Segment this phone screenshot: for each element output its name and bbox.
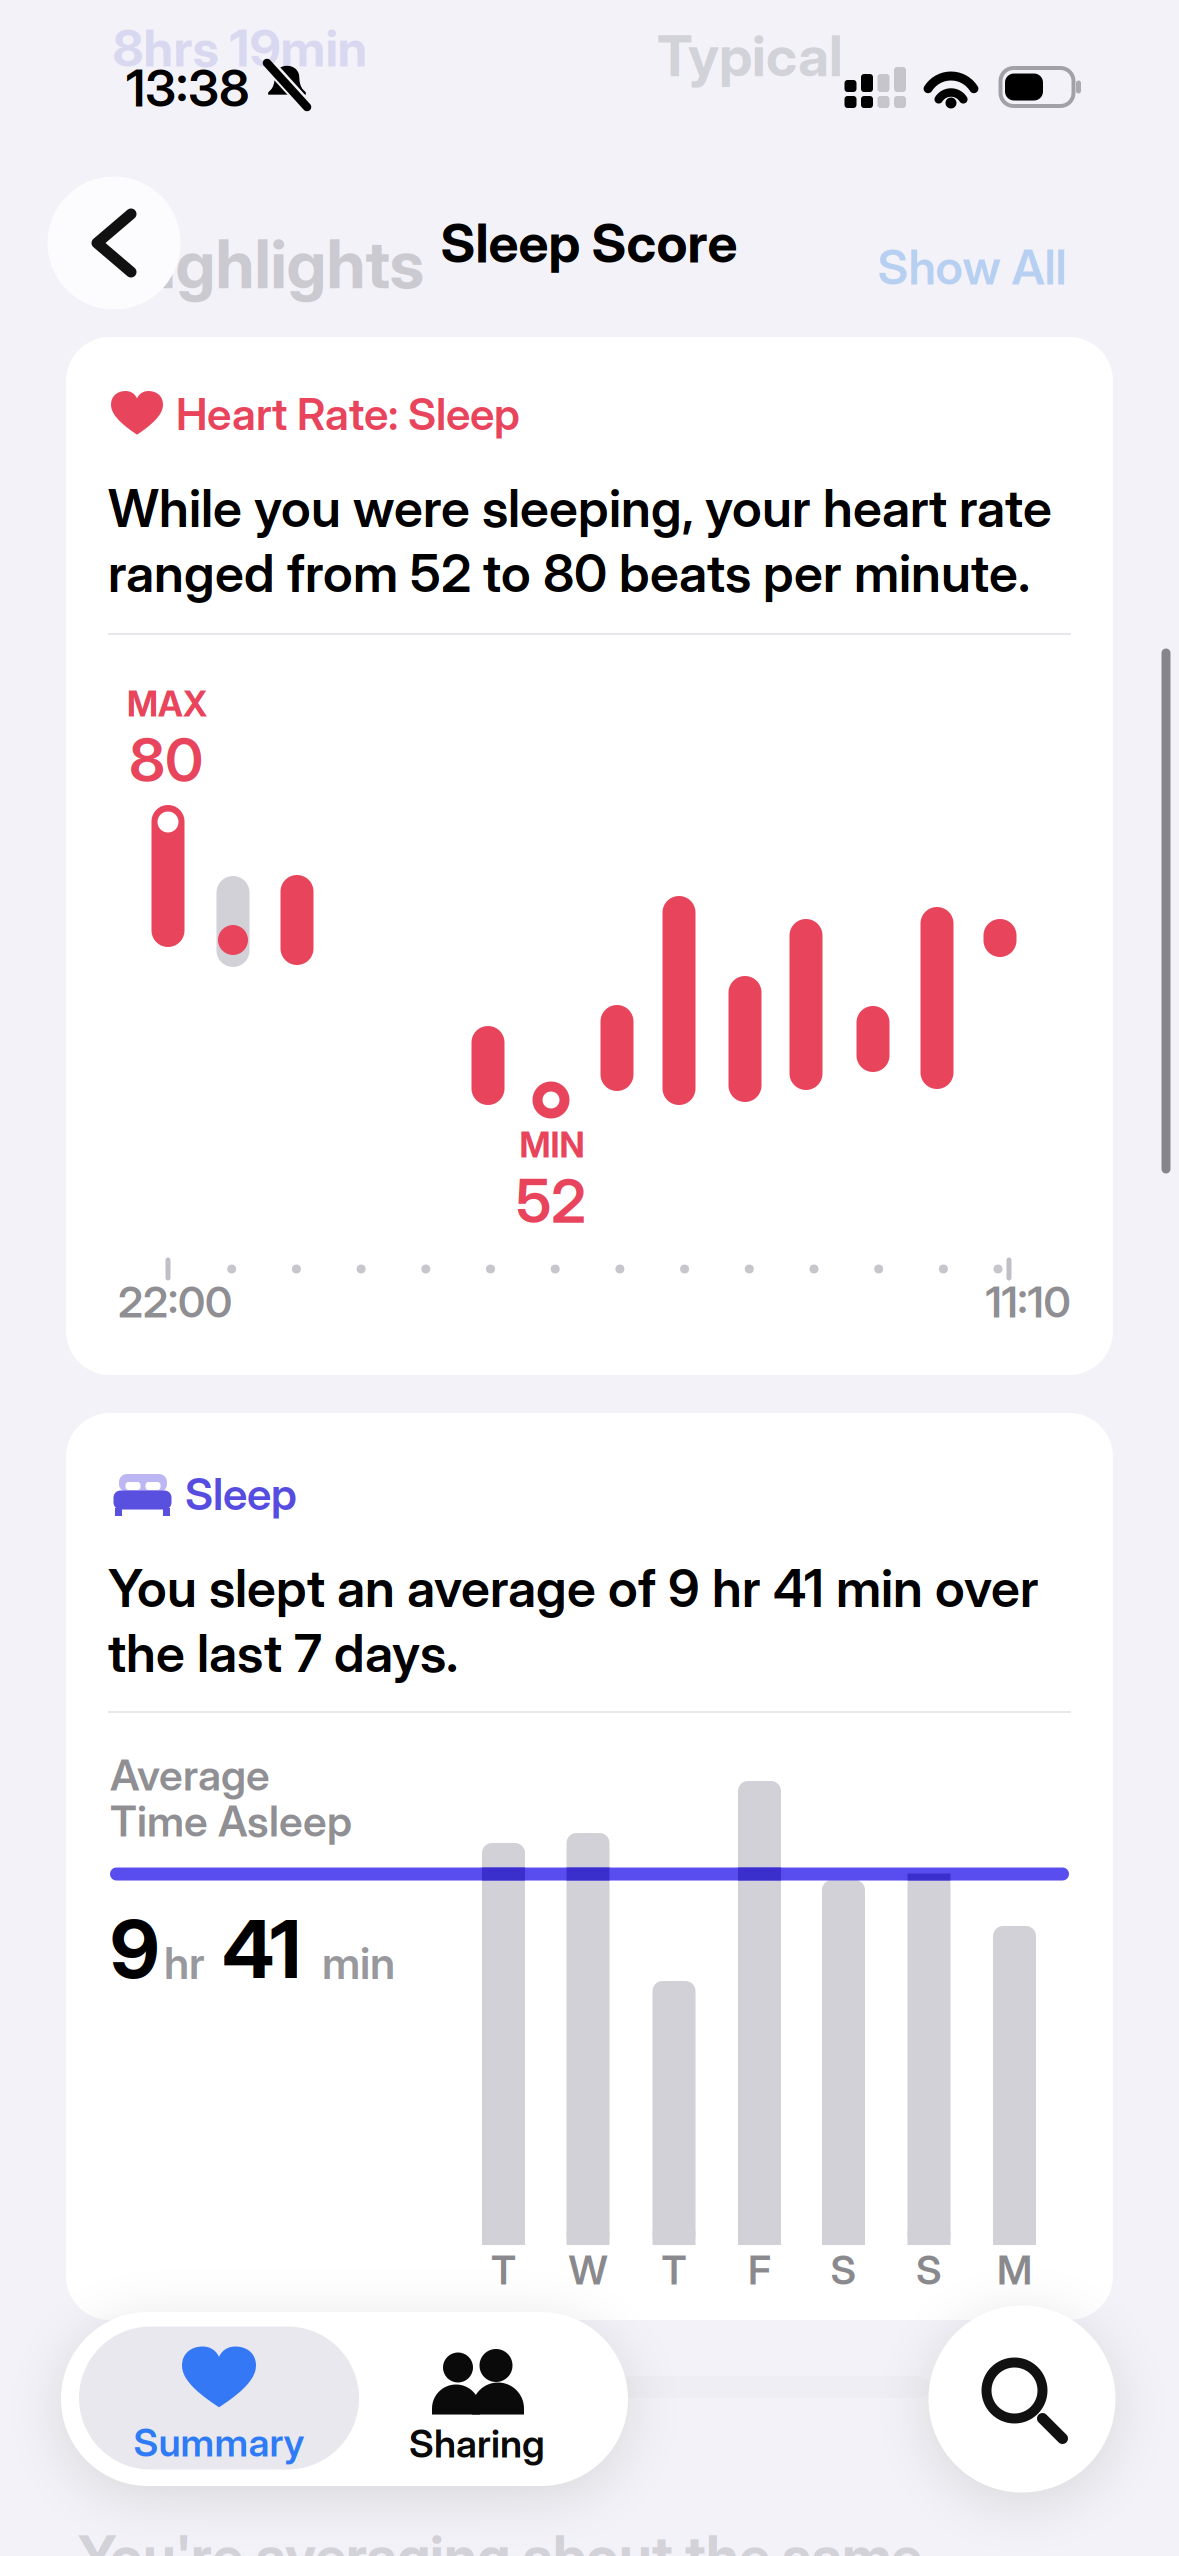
staticText: Time Asleep bbox=[110, 1796, 352, 1846]
staticText: M bbox=[997, 2246, 1032, 2294]
staticText: T bbox=[491, 2246, 516, 2294]
button[interactable]: Back bbox=[47, 176, 180, 309]
staticText: Sleep Score bbox=[440, 211, 737, 274]
staticText: MIN bbox=[519, 1125, 584, 1165]
staticText: 11:10 bbox=[985, 1277, 1070, 1327]
staticText: You're averaging about the same bbox=[78, 2523, 922, 2556]
button[interactable]: Sharing bbox=[420, 2323, 534, 2460]
staticText: 13:38 bbox=[126, 58, 250, 118]
staticText: Typical bbox=[657, 23, 843, 89]
staticText: hr bbox=[164, 1937, 205, 1989]
button[interactable]: Summary bbox=[79, 2326, 359, 2469]
staticText: Highlights bbox=[111, 225, 424, 303]
staticText: W bbox=[568, 2246, 607, 2294]
staticText: S bbox=[916, 2246, 942, 2294]
staticText: Sleep bbox=[185, 1468, 297, 1520]
staticText: T bbox=[661, 2246, 686, 2294]
staticText: the last 7 days. bbox=[108, 1622, 458, 1684]
staticText: MAX bbox=[127, 684, 207, 724]
staticText: Sharing bbox=[409, 2421, 545, 2466]
staticText: Summary bbox=[133, 2420, 304, 2465]
staticText: Show All bbox=[877, 239, 1066, 295]
staticText: 22:00 bbox=[118, 1277, 232, 1327]
staticText: While you were sleeping, your heart rate bbox=[108, 477, 1052, 539]
staticText: ranged from 52 to 80 beats per minute. bbox=[108, 542, 1030, 604]
staticText: Heart Rate: Sleep bbox=[176, 388, 520, 440]
staticText: min bbox=[322, 1937, 395, 1989]
staticText: F bbox=[748, 2246, 771, 2294]
staticText: 9 bbox=[110, 1902, 159, 1996]
staticText: Average bbox=[110, 1750, 270, 1800]
staticText: 52 bbox=[516, 1166, 586, 1236]
staticText: 41 bbox=[222, 1902, 301, 1996]
staticText: 80 bbox=[129, 725, 203, 795]
staticText: 8hrs 19min bbox=[112, 18, 367, 78]
button[interactable]: Search bbox=[928, 2305, 1115, 2492]
staticText: S bbox=[830, 2246, 856, 2294]
staticText: You slept an average of 9 hr 41 min over bbox=[108, 1557, 1039, 1619]
